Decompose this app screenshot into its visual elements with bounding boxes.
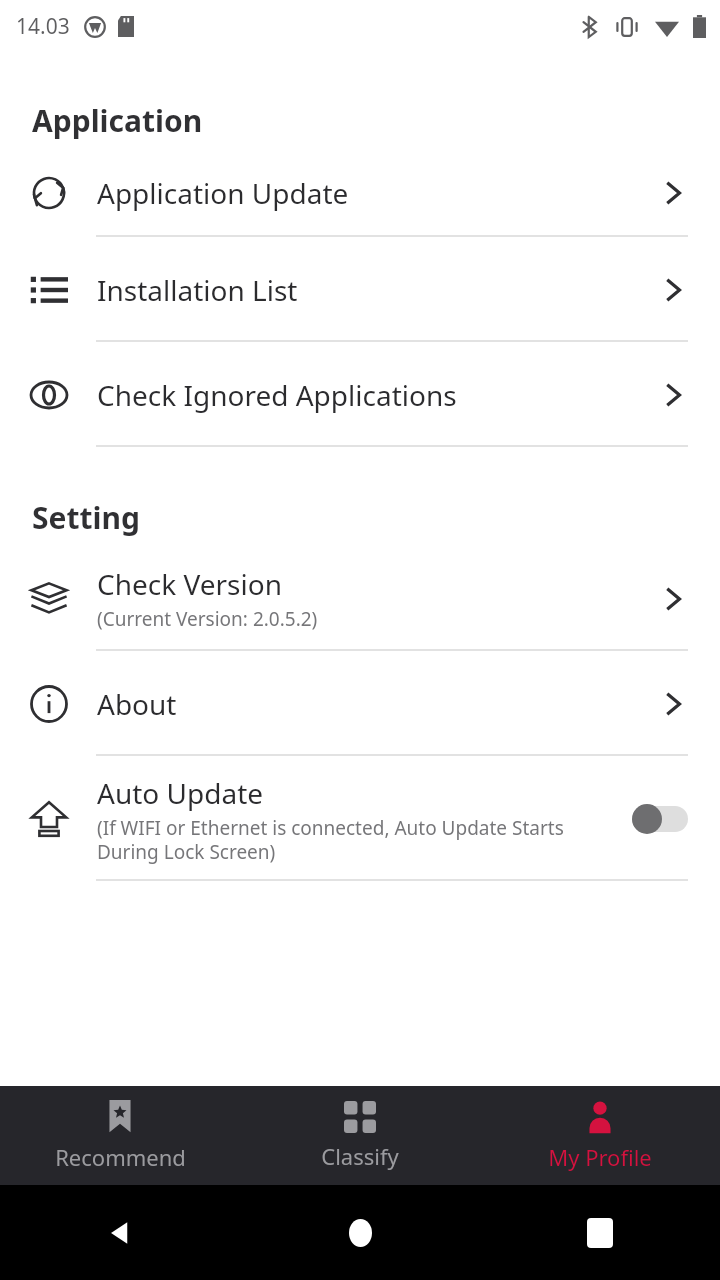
button[interactable]: Home bbox=[337, 1210, 383, 1256]
staticText: (If WIFI or Ethernet is connected, Auto … bbox=[97, 815, 597, 864]
staticText: Auto Update bbox=[97, 774, 264, 812]
button[interactable]: Check Version bbox=[0, 546, 720, 651]
staticText: About bbox=[97, 685, 177, 723]
staticText: Application bbox=[32, 100, 203, 141]
staticText: Check Ignored Applications bbox=[97, 376, 457, 414]
staticText: Setting bbox=[32, 497, 140, 538]
staticText: Recommend bbox=[55, 1142, 186, 1172]
staticText: (Current Version: 2.0.5.2) bbox=[97, 606, 318, 632]
button[interactable]: Application Update bbox=[0, 149, 720, 237]
staticText: Installation List bbox=[97, 271, 298, 309]
button[interactable]: Auto Update toggle bbox=[632, 804, 688, 834]
button[interactable]: Recommend bbox=[0, 1086, 240, 1185]
staticText: Application Update bbox=[97, 174, 349, 212]
staticText: Classify bbox=[321, 1141, 399, 1171]
button[interactable]: Installation List bbox=[0, 237, 720, 342]
staticText: 14.03 bbox=[16, 12, 70, 41]
button[interactable]: Back bbox=[97, 1210, 143, 1256]
button[interactable]: Recents bbox=[577, 1210, 623, 1256]
button[interactable]: Auto Update bbox=[0, 756, 720, 881]
button[interactable]: My Profile bbox=[480, 1086, 720, 1185]
staticText: My Profile bbox=[548, 1142, 652, 1172]
button[interactable]: About bbox=[0, 651, 720, 756]
button[interactable]: Check Ignored Applications bbox=[0, 342, 720, 447]
button[interactable]: Classify bbox=[240, 1086, 480, 1185]
staticText: Check Version bbox=[97, 565, 282, 603]
